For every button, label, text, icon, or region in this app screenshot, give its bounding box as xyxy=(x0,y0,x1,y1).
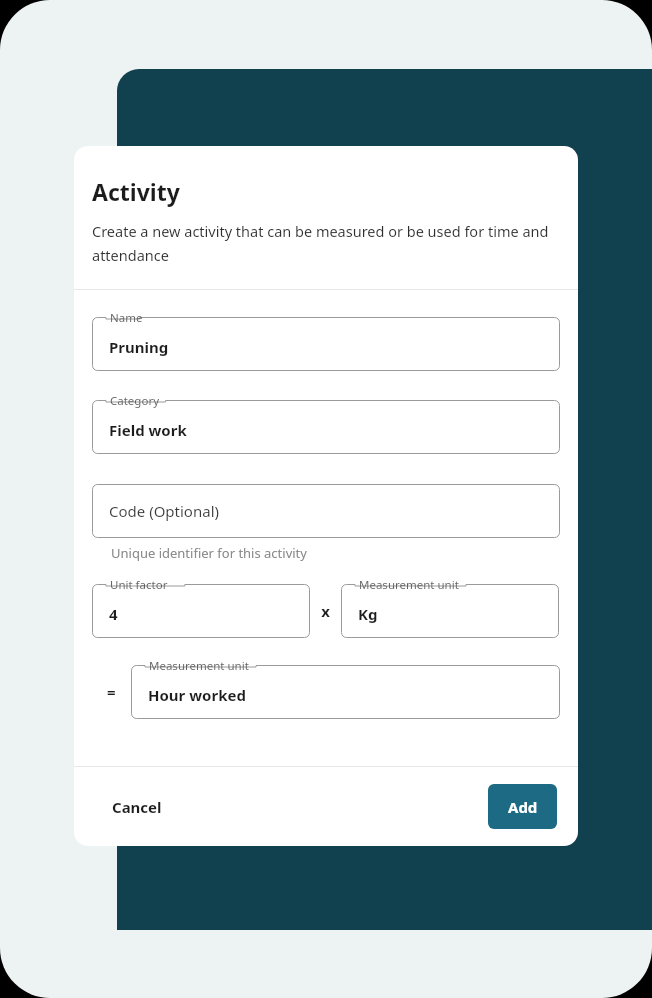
staticText: Kg xyxy=(358,604,378,624)
staticText: Activity xyxy=(92,176,180,207)
staticText: Measurement unit xyxy=(359,577,459,593)
staticText: Field work xyxy=(109,420,187,440)
staticText: Measurement unit xyxy=(149,658,249,674)
button[interactable]: Measurement unit xyxy=(131,665,560,719)
staticText: Pruning xyxy=(109,337,169,357)
button[interactable]: Measurement unit xyxy=(341,584,559,638)
staticText: = xyxy=(107,682,116,702)
staticText: Name xyxy=(110,310,143,326)
button[interactable]: Category xyxy=(92,400,560,454)
button[interactable]: Name xyxy=(92,317,560,371)
staticText: Unique identifier for this activity xyxy=(111,544,307,562)
staticText: x xyxy=(321,601,330,621)
staticText: Category xyxy=(110,393,160,409)
button[interactable]: Add xyxy=(488,784,557,829)
staticText: Code (Optional) xyxy=(109,501,219,521)
button[interactable]: Code (Optional) xyxy=(92,484,560,538)
button[interactable]: Cancel xyxy=(74,785,182,829)
button[interactable]: Unit factor xyxy=(92,584,310,638)
staticText: Unit factor xyxy=(110,577,168,593)
staticText: Hour worked xyxy=(148,685,246,705)
staticText: Cancel xyxy=(112,797,162,817)
staticText: Create a new activity that can be measur… xyxy=(92,221,560,265)
staticText: 4 xyxy=(109,604,118,624)
staticText: Add xyxy=(508,797,538,817)
